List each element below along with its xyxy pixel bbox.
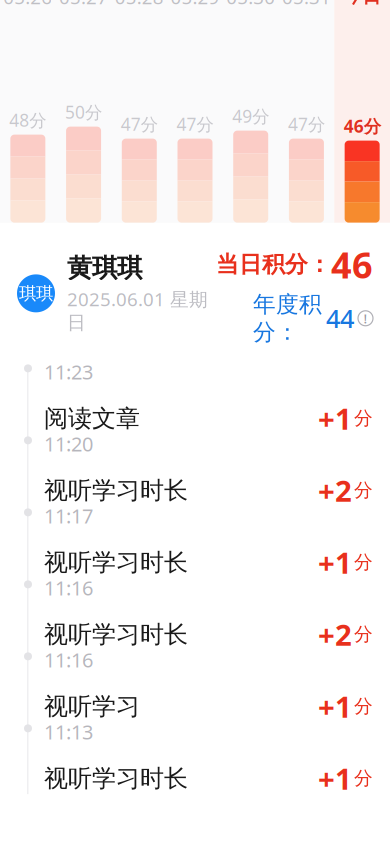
staticText: +2 [318,471,352,510]
button[interactable]: 今日 [334,0,390,223]
staticText: 11:17 [44,502,93,529]
staticText: 05.27 [59,0,108,9]
staticText: 分 [354,551,373,574]
button[interactable]: 05.31 [279,0,334,223]
staticText: 44 [326,301,354,335]
staticText: 05.28 [115,0,164,9]
staticText: 11:20 [44,430,93,457]
button[interactable]: 11:17 [0,506,390,578]
staticText: 05.30 [226,0,275,9]
staticText: 分 [354,479,373,502]
staticText: 49分 [232,105,269,128]
button[interactable]: 年度积分： [253,290,373,346]
staticText: 11:13 [44,718,93,745]
staticText: 11:16 [44,646,93,673]
staticText: 05.31 [282,0,331,9]
staticText: 视听学习时长 [44,548,188,577]
staticText: 阅读文章 [44,404,140,433]
staticText: +1 [318,759,352,798]
staticText: 05.26 [3,0,52,9]
staticText: +1 [318,399,352,438]
staticText: 50分 [65,101,102,124]
staticText: +2 [318,615,352,654]
button[interactable]: 11:16 [0,578,390,650]
staticText: 分 [354,695,373,718]
staticText: 48分 [9,109,46,132]
staticText: 年度积分： [253,290,322,346]
button[interactable]: 05.28 [111,0,167,223]
staticText: 47分 [121,113,158,136]
staticText: +1 [318,543,352,582]
staticText: 分 [354,623,373,646]
staticText: 11:16 [44,574,93,601]
staticText: 今日 [343,0,381,7]
staticText: 46 [331,241,373,288]
staticText: 11:23 [44,358,93,385]
button[interactable]: 05.27 [56,0,111,223]
staticText: 46分 [344,115,381,138]
button[interactable]: 05.26 [0,0,56,223]
staticText: 视听学习 [44,692,140,721]
staticText: 琪琪 [19,283,53,304]
button[interactable]: 11:20 [0,434,390,506]
button[interactable]: 11:13 [0,722,390,794]
button[interactable]: 05.29 [167,0,223,223]
staticText: +1 [318,687,352,726]
button[interactable]: 05.30 [223,0,279,223]
staticText: 分 [354,767,373,790]
staticText: 分 [354,407,373,430]
button[interactable]: 11:23 [0,362,390,434]
button[interactable]: 11:16 [0,650,390,722]
staticText: ! [363,309,367,327]
staticText: 05.29 [170,0,219,9]
staticText: 当日积分： [216,251,331,278]
staticText: 黄琪琪 [67,252,142,284]
staticText: 47分 [176,113,213,136]
staticText: 视听学习时长 [44,764,188,793]
staticText: 视听学习时长 [44,620,188,649]
staticText: 47分 [288,113,325,136]
staticText: 2025.06.01 星期日 [67,287,208,334]
staticText: 视听学习时长 [44,476,188,505]
